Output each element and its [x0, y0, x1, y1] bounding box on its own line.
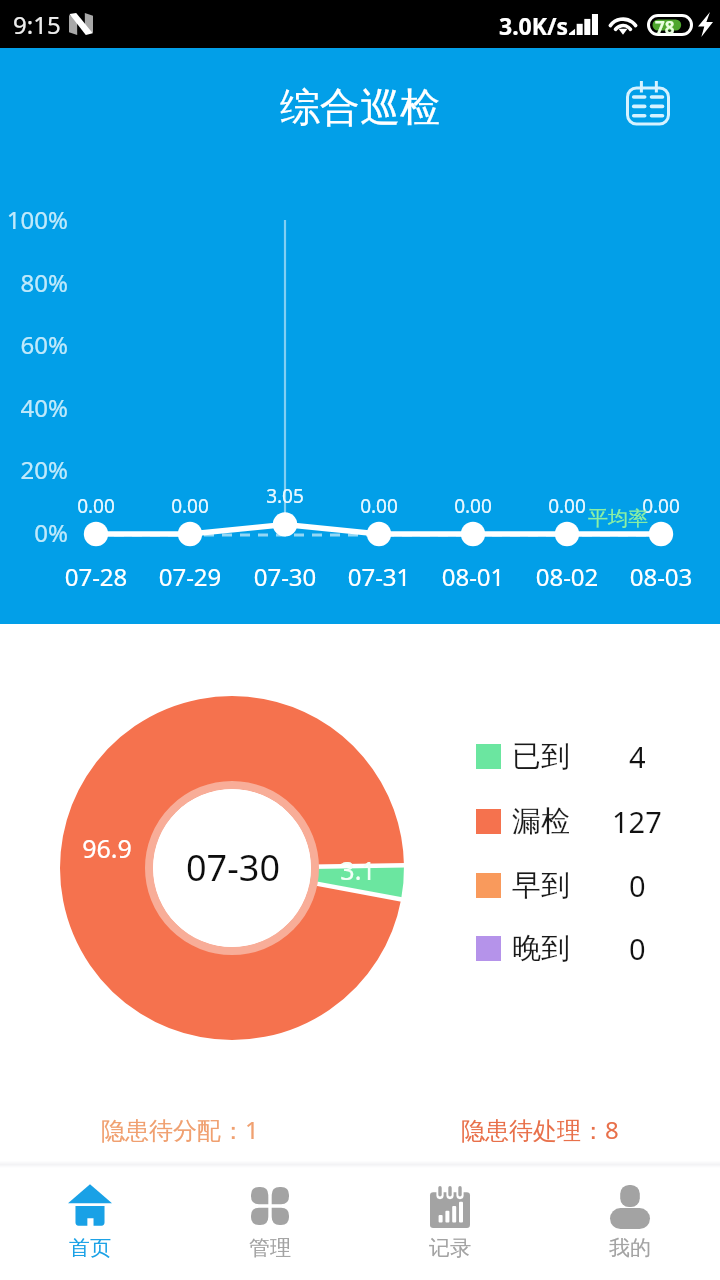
- staticText: 0.00: [522, 493, 612, 519]
- staticText: 3.05: [240, 483, 330, 509]
- staticText: 隐患待分配：1: [101, 1113, 259, 1146]
- staticText: 0.00: [51, 493, 141, 519]
- staticText: 3.1: [313, 853, 403, 887]
- button[interactable]: Calendar: [617, 73, 679, 135]
- staticText: 9:15: [13, 8, 61, 41]
- staticText: 我的: [609, 1235, 651, 1261]
- staticText: 综合巡检: [280, 82, 440, 132]
- staticText: 0: [629, 866, 646, 905]
- button[interactable]: 晚到: [476, 922, 706, 974]
- staticText: 0.00: [428, 493, 518, 519]
- staticText: 0.00: [616, 493, 706, 519]
- button[interactable]: 隐患待分配：1: [0, 1086, 360, 1161]
- staticText: 记录: [429, 1235, 471, 1261]
- button[interactable]: 我的: [540, 1168, 720, 1280]
- staticText: 0%: [0, 516, 68, 549]
- button[interactable]: 记录: [360, 1168, 540, 1280]
- button[interactable]: 漏检: [476, 795, 706, 847]
- staticText: 20%: [0, 453, 68, 486]
- staticText: 3.0K/s: [499, 10, 569, 41]
- staticText: 78: [655, 16, 675, 38]
- button[interactable]: 早到: [476, 859, 706, 911]
- staticText: 08-01: [423, 560, 523, 593]
- staticText: 0.00: [145, 493, 235, 519]
- button[interactable]: 已到: [476, 730, 706, 782]
- staticText: 管理: [249, 1235, 291, 1261]
- button[interactable]: 隐患待处理：8: [360, 1086, 720, 1161]
- staticText: 60%: [0, 328, 68, 361]
- staticText: 07-29: [140, 560, 240, 593]
- staticText: 08-02: [517, 560, 617, 593]
- staticText: 4: [629, 737, 646, 776]
- staticText: 07-30: [163, 843, 303, 892]
- staticText: 07-28: [46, 560, 146, 593]
- staticText: 早到: [512, 867, 570, 904]
- button[interactable]: 首页: [0, 1168, 180, 1280]
- staticText: 07-31: [329, 560, 429, 593]
- staticText: 首页: [69, 1235, 111, 1261]
- staticText: 40%: [0, 391, 68, 424]
- staticText: 100%: [0, 203, 68, 236]
- staticText: 96.9: [62, 831, 152, 865]
- staticText: 08-03: [611, 560, 711, 593]
- staticText: 已到: [512, 738, 570, 775]
- button[interactable]: 管理: [180, 1168, 360, 1280]
- staticText: 漏检: [512, 803, 570, 840]
- staticText: 隐患待处理：8: [461, 1113, 619, 1146]
- staticText: 0.00: [334, 493, 424, 519]
- staticText: 127: [612, 802, 662, 841]
- staticText: 80%: [0, 266, 68, 299]
- staticText: 晚到: [512, 930, 570, 967]
- staticText: 平均率: [588, 506, 648, 531]
- staticText: 0: [629, 929, 646, 968]
- staticText: 07-30: [235, 560, 335, 593]
